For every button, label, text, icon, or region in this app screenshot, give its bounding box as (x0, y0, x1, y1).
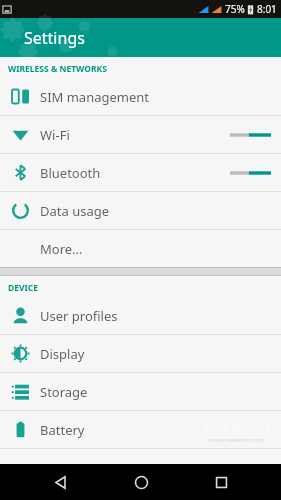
staticText: 75% (225, 2, 245, 16)
staticText: Display (40, 345, 85, 363)
button[interactable]: Wi-Fi (0, 116, 281, 154)
staticText: Wi-Fi (40, 126, 70, 144)
button[interactable]: SIM management (0, 78, 281, 116)
staticText: More... (40, 240, 83, 258)
button[interactable]: Recent apps (201, 464, 241, 500)
button[interactable]: User profiles (0, 297, 281, 335)
staticText: Data usage (40, 202, 110, 220)
staticText: www.needrom.com (209, 436, 265, 444)
button[interactable]: Back (40, 464, 80, 500)
button[interactable]: Toggle (230, 130, 271, 140)
button[interactable]: Home (121, 464, 161, 500)
button[interactable]: Battery (0, 411, 281, 449)
staticText: Bluetooth (40, 164, 101, 182)
staticText: DEVICE (8, 282, 39, 294)
staticText: Settings (24, 27, 85, 49)
button[interactable]: Display (0, 335, 281, 373)
button[interactable]: Toggle (230, 168, 271, 178)
staticText: WIRELESS & NETWORKS (8, 63, 107, 75)
button[interactable]: Storage (0, 373, 281, 411)
button[interactable]: More... (0, 230, 281, 267)
staticText: User profiles (40, 307, 118, 325)
button[interactable]: Data usage (0, 192, 281, 230)
staticText: Battery (40, 421, 85, 439)
staticText: SIM management (40, 88, 150, 106)
staticText: 8:01 (257, 2, 277, 16)
staticText: Storage (40, 383, 88, 401)
button[interactable]: Bluetooth (0, 154, 281, 192)
